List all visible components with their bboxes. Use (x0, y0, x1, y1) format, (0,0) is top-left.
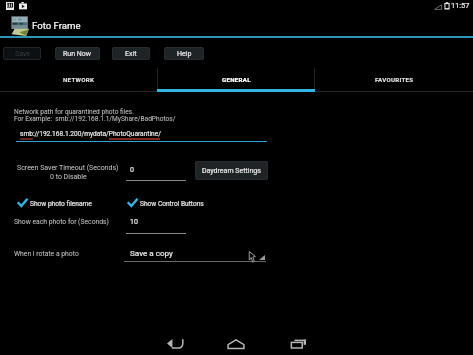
staticText: smb://192.168.1.200/mydata/PhotoQuaranti… (20, 130, 161, 138)
staticText: Help (177, 50, 192, 58)
staticText: For Example: smb://192.168.1.1/MyShare/B… (14, 115, 176, 123)
button[interactable]: Save a copy (124, 247, 266, 262)
staticText: GENERAL (222, 76, 251, 83)
button[interactable]: Back (153, 331, 197, 355)
staticText: Run Now (63, 50, 92, 58)
staticText: Exit (125, 50, 137, 58)
staticText: Screen Saver Timeout (Seconds) (17, 164, 119, 172)
staticText: FAVOURITES (375, 76, 414, 83)
staticText: 0 to Disable (50, 173, 87, 181)
staticText: Show photo filename (30, 200, 92, 208)
button[interactable]: Show Control Buttons (128, 198, 204, 209)
button[interactable]: NETWORK (0, 68, 157, 92)
staticText: 11:57 (451, 1, 470, 10)
staticText: Save a copy (130, 248, 173, 257)
button[interactable]: Recent apps (276, 331, 320, 355)
staticText: Show Control Buttons (140, 200, 204, 208)
staticText: When I rotate a photo (14, 250, 79, 258)
staticText: NETWORK (63, 76, 95, 83)
staticText: Show each photo for (Seconds) (14, 218, 109, 226)
button[interactable]: Help (164, 47, 204, 60)
staticText: Daydream Settings (202, 167, 261, 175)
button[interactable]: Show photo filename (18, 198, 92, 209)
button[interactable]: 0 (126, 164, 186, 181)
button[interactable]: Home (214, 331, 258, 355)
button[interactable]: Exit (112, 47, 150, 60)
staticText: 10 (130, 218, 138, 226)
staticText: Save (15, 50, 30, 58)
button[interactable]: FAVOURITES (315, 68, 473, 92)
button[interactable]: smb://192.168.1.200/mydata/PhotoQuaranti… (16, 128, 267, 142)
button[interactable]: Run Now (55, 47, 100, 60)
staticText: 0 (130, 166, 134, 174)
staticText: Foto Frame (32, 20, 81, 31)
button[interactable]: Daydream Settings (195, 161, 268, 180)
button[interactable]: GENERAL (157, 68, 315, 92)
button[interactable]: Save (3, 47, 41, 60)
button[interactable]: 10 (126, 217, 186, 234)
staticText: Network path for quarantined photo files… (14, 108, 134, 116)
